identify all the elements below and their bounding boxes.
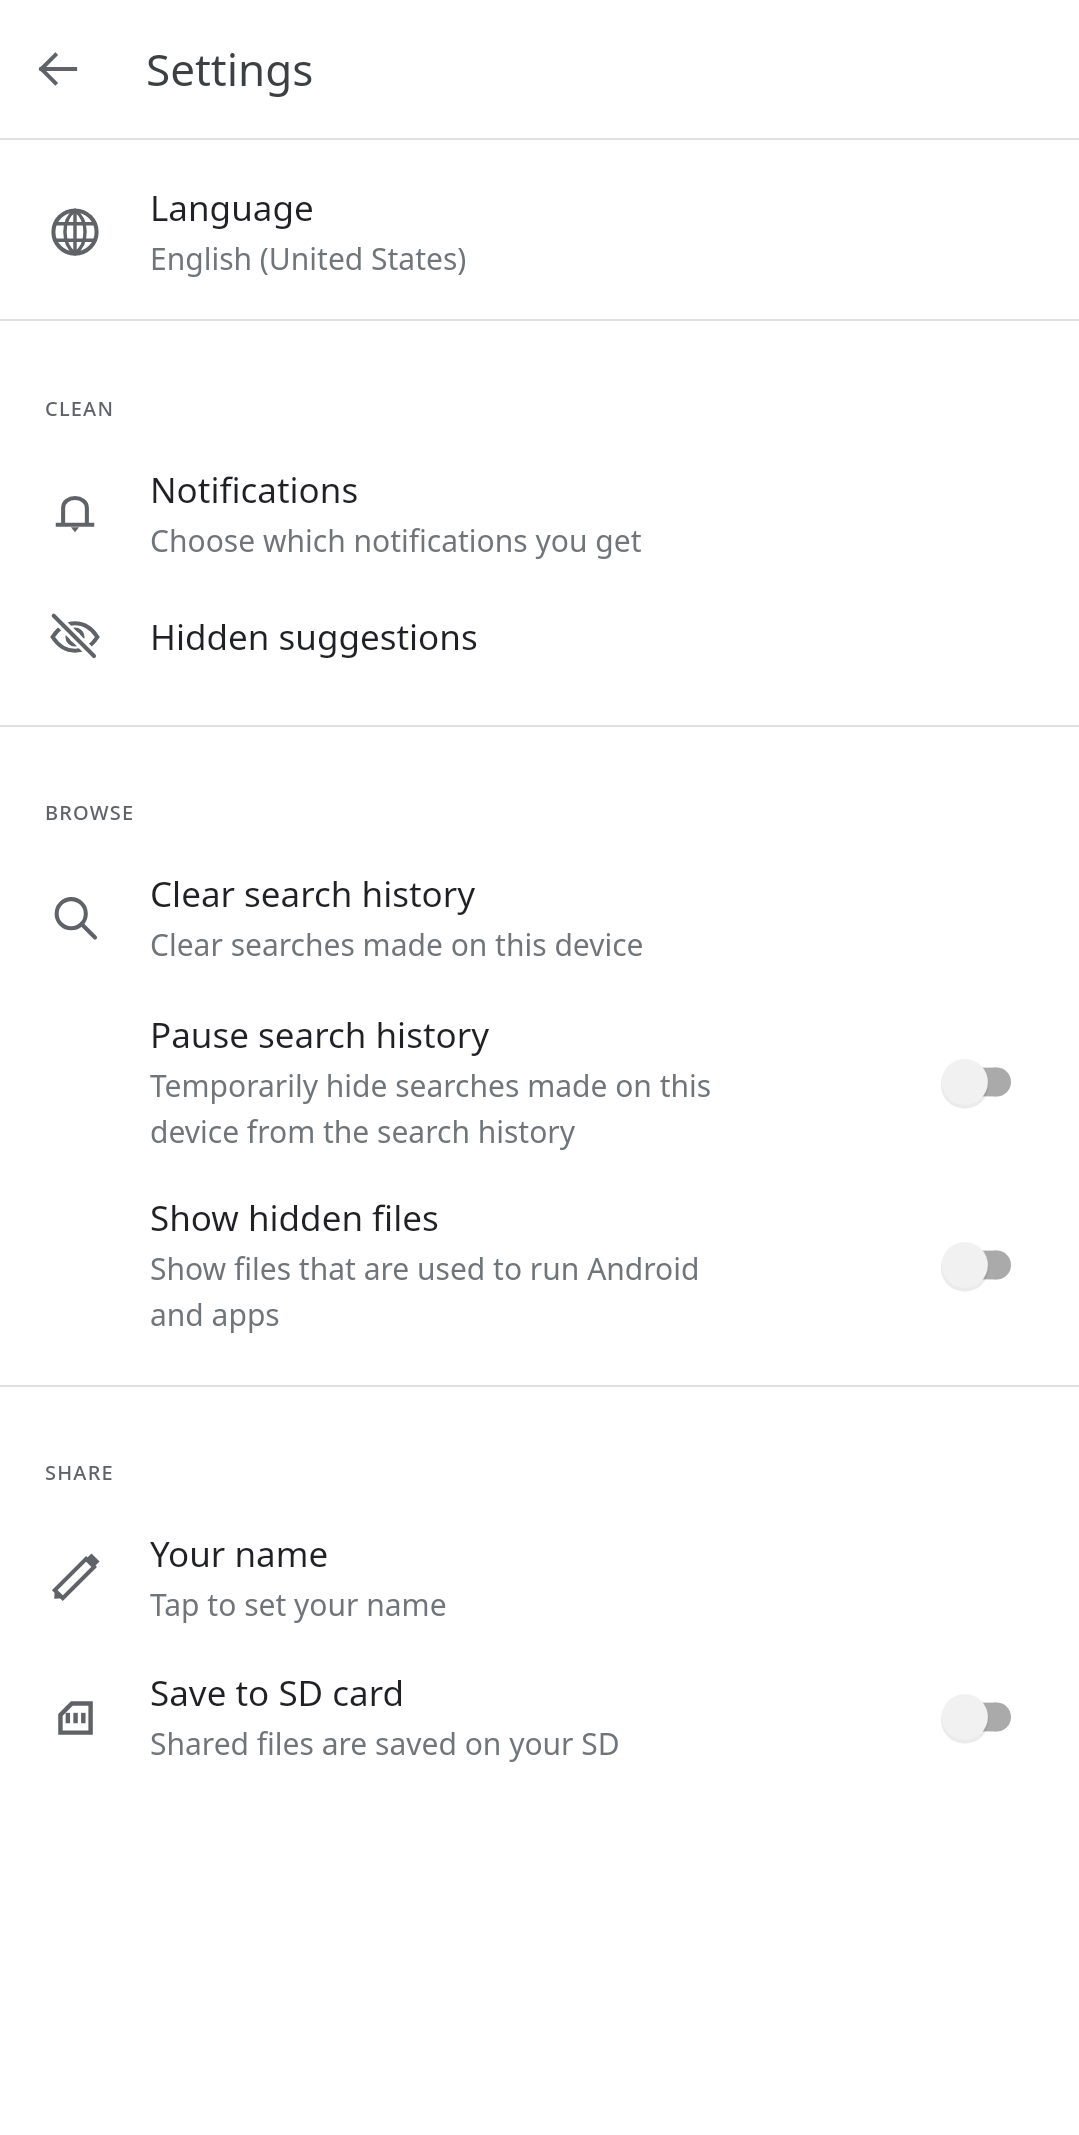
staticText: Notifications bbox=[150, 466, 359, 514]
button[interactable]: Clear search history bbox=[0, 826, 1079, 985]
button[interactable]: Toggle Show hidden files bbox=[931, 1235, 1031, 1295]
staticText: Pause search history bbox=[150, 1011, 490, 1059]
staticText: Show hidden files bbox=[150, 1194, 439, 1242]
button[interactable]: Save to SD card bbox=[0, 1643, 1079, 1794]
staticText: English (United States) bbox=[150, 238, 467, 279]
other: Hidden suggestions bbox=[47, 609, 103, 665]
staticText: Your name bbox=[150, 1530, 329, 1578]
button[interactable]: Toggle Pause search history bbox=[931, 1052, 1031, 1112]
other: Your name bbox=[48, 1551, 102, 1605]
staticText: Shared files are saved on your SD bbox=[150, 1723, 620, 1764]
staticText: Save to SD card bbox=[150, 1669, 404, 1717]
staticText: Tap to set your name bbox=[150, 1584, 447, 1625]
staticText: Temporarily hide searches made on this d… bbox=[150, 1065, 790, 1152]
staticText: Hidden suggestions bbox=[150, 613, 478, 661]
button[interactable]: Notifications bbox=[0, 422, 1079, 579]
button[interactable]: Back bbox=[20, 31, 96, 107]
button[interactable]: Show hidden files bbox=[0, 1168, 1079, 1385]
staticText: SHARE bbox=[45, 1459, 114, 1486]
staticText: BROWSE bbox=[45, 799, 135, 826]
other: Clear search history bbox=[48, 891, 102, 945]
other: Language bbox=[48, 205, 102, 259]
staticText: Show files that are used to run Android … bbox=[150, 1248, 710, 1335]
other: Save to SD card bbox=[49, 1691, 101, 1743]
button[interactable]: Hidden suggestions bbox=[0, 579, 1079, 725]
button[interactable]: Your name bbox=[0, 1486, 1079, 1643]
other: Notifications bbox=[48, 487, 102, 541]
staticText: Settings bbox=[146, 39, 314, 99]
staticText: Choose which notifications you get bbox=[150, 520, 642, 561]
button[interactable]: Toggle Save to SD card bbox=[931, 1687, 1031, 1747]
staticText: Clear searches made on this device bbox=[150, 924, 644, 965]
staticText: CLEAN bbox=[45, 395, 115, 422]
button[interactable]: Language bbox=[0, 140, 1079, 319]
staticText: Language bbox=[150, 184, 314, 232]
staticText: Clear search history bbox=[150, 870, 476, 918]
button[interactable]: Pause search history bbox=[0, 985, 1079, 1168]
